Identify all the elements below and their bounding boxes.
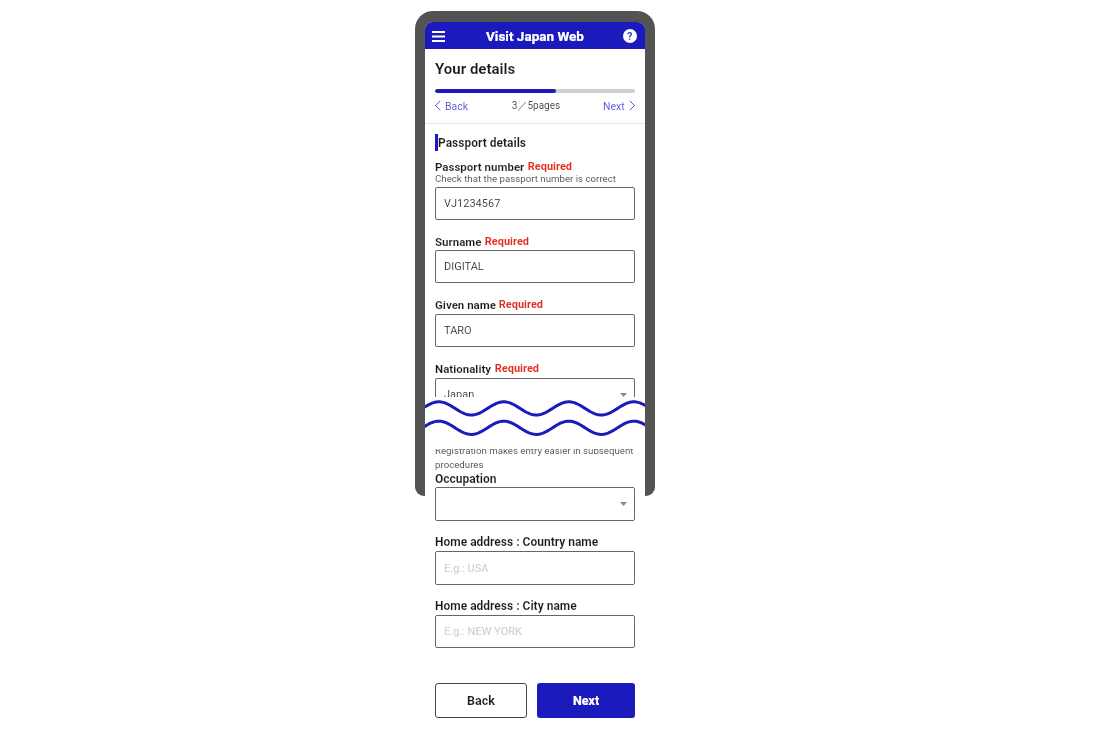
button[interactable] [435, 487, 635, 521]
staticText: Home address : Country name [435, 535, 599, 549]
staticText: E.g.: USA [444, 562, 489, 575]
button[interactable]: Next [537, 683, 635, 718]
staticText: Required [496, 298, 544, 311]
staticText: Nationality [435, 362, 492, 375]
button[interactable]: Next [603, 98, 635, 113]
staticText: Back [467, 693, 495, 708]
staticText: Visit Japan Web [486, 28, 584, 44]
staticText: Passport number [435, 160, 525, 173]
staticText: Home address : City name [435, 599, 577, 613]
button[interactable]: E.g.: NEW YORK [435, 615, 635, 648]
staticText: Required [525, 160, 573, 173]
button[interactable]: E.g.: USA [435, 551, 635, 585]
staticText: Given name [435, 298, 496, 311]
button[interactable]: Japan [435, 378, 635, 411]
staticText: Your details [435, 60, 516, 78]
staticText: Required [482, 235, 530, 248]
staticText: Passport details [438, 136, 527, 150]
staticText: TARO [444, 324, 472, 337]
button[interactable]: TARO [435, 314, 635, 347]
staticText: Surname [435, 235, 482, 248]
staticText: DIGITAL [444, 260, 484, 273]
button[interactable]: Back [435, 683, 527, 718]
button[interactable]: Help [621, 25, 639, 47]
staticText: 3／5pages [469, 99, 603, 112]
staticText: VJ1234567 [444, 197, 501, 210]
staticText: Required [492, 362, 540, 375]
button[interactable]: DIGITAL [435, 250, 635, 283]
staticText: procedures [435, 459, 484, 470]
staticText: Registration makes entry easier in subse… [435, 445, 634, 456]
staticText: Back [445, 100, 469, 112]
staticText: Next [573, 693, 600, 708]
button[interactable]: Back [435, 98, 469, 113]
button[interactable]: VJ1234567 [435, 187, 635, 220]
staticText: Occupation [435, 472, 497, 486]
staticText: Check that the passport number is correc… [435, 173, 616, 184]
staticText: E.g.: NEW YORK [444, 625, 522, 638]
staticText: Next [603, 100, 625, 112]
staticText: Japan [444, 388, 475, 401]
button[interactable]: Menu [428, 25, 448, 47]
staticText: ? [627, 30, 633, 43]
